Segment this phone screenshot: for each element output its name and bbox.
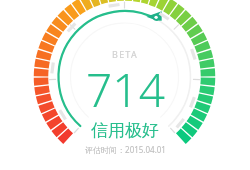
staticText: 评估时间：2015.04.01 [85, 144, 166, 155]
staticText: 714 [86, 58, 165, 121]
button[interactable]: Credit score gauge [0, 0, 250, 170]
staticText: BETA [112, 48, 138, 60]
staticText: 信用极好 [91, 120, 159, 141]
